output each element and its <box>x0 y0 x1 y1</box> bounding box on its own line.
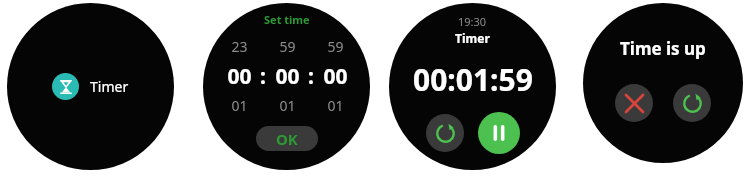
staticText: : <box>260 62 266 91</box>
staticText: Timer <box>90 77 129 96</box>
staticText: 00 <box>227 62 252 91</box>
staticText: 59 <box>279 37 296 56</box>
button[interactable]: Restart <box>673 84 711 122</box>
button[interactable]: Pause <box>478 112 520 154</box>
staticText: : <box>308 62 314 91</box>
staticText: 01 <box>279 96 296 115</box>
staticText: Time is up <box>620 37 706 60</box>
staticText: 19:30 <box>458 14 487 29</box>
staticText: 23 <box>231 37 248 56</box>
staticText: 01 <box>327 96 344 115</box>
button[interactable]: Timer <box>48 69 133 104</box>
staticText: 01 <box>231 96 248 115</box>
staticText: Timer <box>455 30 490 46</box>
button[interactable]: OK <box>256 126 318 151</box>
button[interactable]: Reset <box>426 114 464 152</box>
staticText: Set time <box>264 12 310 27</box>
staticText: OK <box>276 129 298 149</box>
staticText: 00:01:59 <box>413 59 533 100</box>
button[interactable]: Dismiss <box>615 84 653 122</box>
staticText: 59 <box>327 37 344 56</box>
staticText: 00 <box>323 62 348 91</box>
staticText: 00 <box>275 62 300 91</box>
